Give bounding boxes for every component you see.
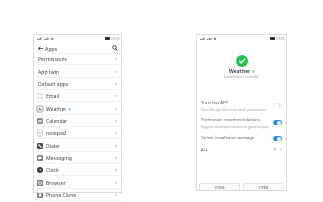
staticText: ALL [201, 147, 208, 152]
button[interactable]: DONE [199, 183, 240, 191]
staticText: Delete installation package [201, 135, 255, 141]
staticText: Weather [229, 68, 251, 75]
staticText: Weather [46, 106, 67, 113]
button[interactable]: OPEN [243, 183, 284, 191]
staticText: Browser [46, 180, 66, 187]
button[interactable]: Clock [33, 164, 122, 176]
button[interactable]: Default apps [33, 78, 122, 90]
staticText: Email [46, 93, 60, 100]
button[interactable]: Calendar [33, 115, 122, 127]
staticText: notepad [46, 130, 67, 137]
staticText: 09:35 [111, 36, 120, 41]
staticText: Calendar [46, 118, 68, 125]
staticText: Apps [45, 45, 58, 52]
button[interactable]: Messaging [33, 152, 122, 164]
button[interactable]: Delete installation package [201, 131, 282, 145]
staticText: Installation successful [224, 74, 260, 79]
button[interactable]: ALL [201, 144, 282, 155]
staticText: Clock [46, 167, 59, 174]
staticText: Permission recommendations [201, 117, 260, 123]
staticText: Give this app full access to all permiss… [201, 107, 266, 111]
button[interactable]: Permissions [33, 53, 122, 65]
staticText: Suggest which permissions to grant to ap… [201, 124, 269, 128]
button[interactable]: notepad [33, 127, 122, 139]
staticText: OPEN [259, 185, 269, 190]
other: Back [38, 46, 43, 51]
staticText: Dialer [46, 143, 61, 150]
staticText: DONE [215, 185, 225, 190]
button[interactable]: Dialer [33, 140, 122, 152]
button[interactable]: App twin [33, 66, 122, 78]
staticText: 09:35 [276, 36, 285, 41]
staticText: Phone Clone [46, 192, 77, 199]
button[interactable]: Back [38, 42, 118, 54]
button[interactable]: Browser [33, 177, 122, 189]
button[interactable]: Trust this APP [201, 97, 282, 114]
staticText: Messaging [46, 155, 72, 162]
button[interactable]: Phone Clone [33, 189, 122, 201]
staticText: Default apps [38, 81, 69, 88]
staticText: 8 [274, 147, 277, 152]
button[interactable]: Search [112, 45, 118, 51]
button[interactable]: Permission recommendations [201, 114, 282, 131]
staticText: App twin [38, 69, 60, 76]
button[interactable]: Weather [33, 103, 122, 115]
staticText: Permissions [38, 56, 67, 63]
button[interactable]: Email [33, 90, 122, 102]
staticText: Trust this APP [201, 100, 229, 106]
